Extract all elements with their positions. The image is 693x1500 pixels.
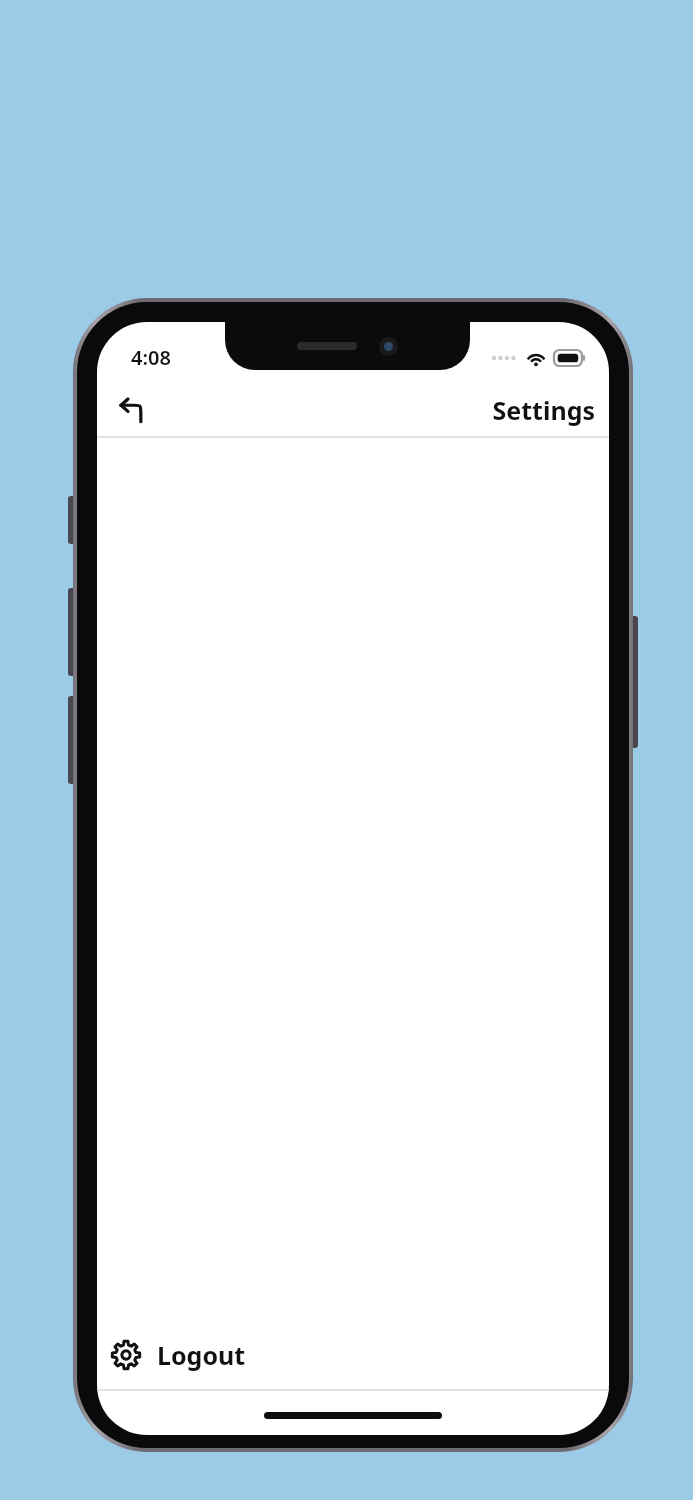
staticText: Logout xyxy=(157,1338,246,1372)
staticText: Settings xyxy=(492,393,595,427)
staticText: 4:08 xyxy=(131,344,171,371)
button[interactable]: Back xyxy=(109,386,157,434)
button[interactable]: Settings xyxy=(492,393,595,427)
button[interactable]: Logout xyxy=(97,1321,609,1389)
